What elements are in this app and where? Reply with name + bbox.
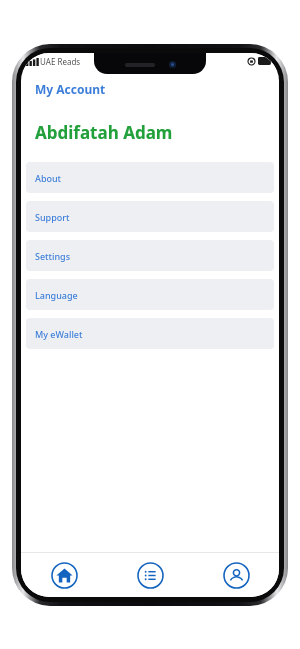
staticText: My eWallet <box>35 328 83 340</box>
button[interactable]: Language <box>26 279 274 310</box>
button[interactable]: Profile <box>193 553 279 597</box>
button[interactable]: List <box>107 553 193 597</box>
button[interactable]: My eWallet <box>26 318 274 349</box>
button[interactable]: About <box>26 162 274 193</box>
staticText: Settings <box>35 250 71 262</box>
button[interactable]: Settings <box>26 240 274 271</box>
staticText: About <box>35 172 62 184</box>
staticText: Abdifatah Adam <box>35 121 173 144</box>
staticText: Support <box>35 211 70 223</box>
staticText: UAE Reads <box>40 56 81 67</box>
button[interactable]: Home <box>21 553 107 597</box>
button[interactable]: My Account <box>21 79 120 99</box>
button[interactable]: Support <box>26 201 274 232</box>
staticText: Language <box>35 289 78 301</box>
